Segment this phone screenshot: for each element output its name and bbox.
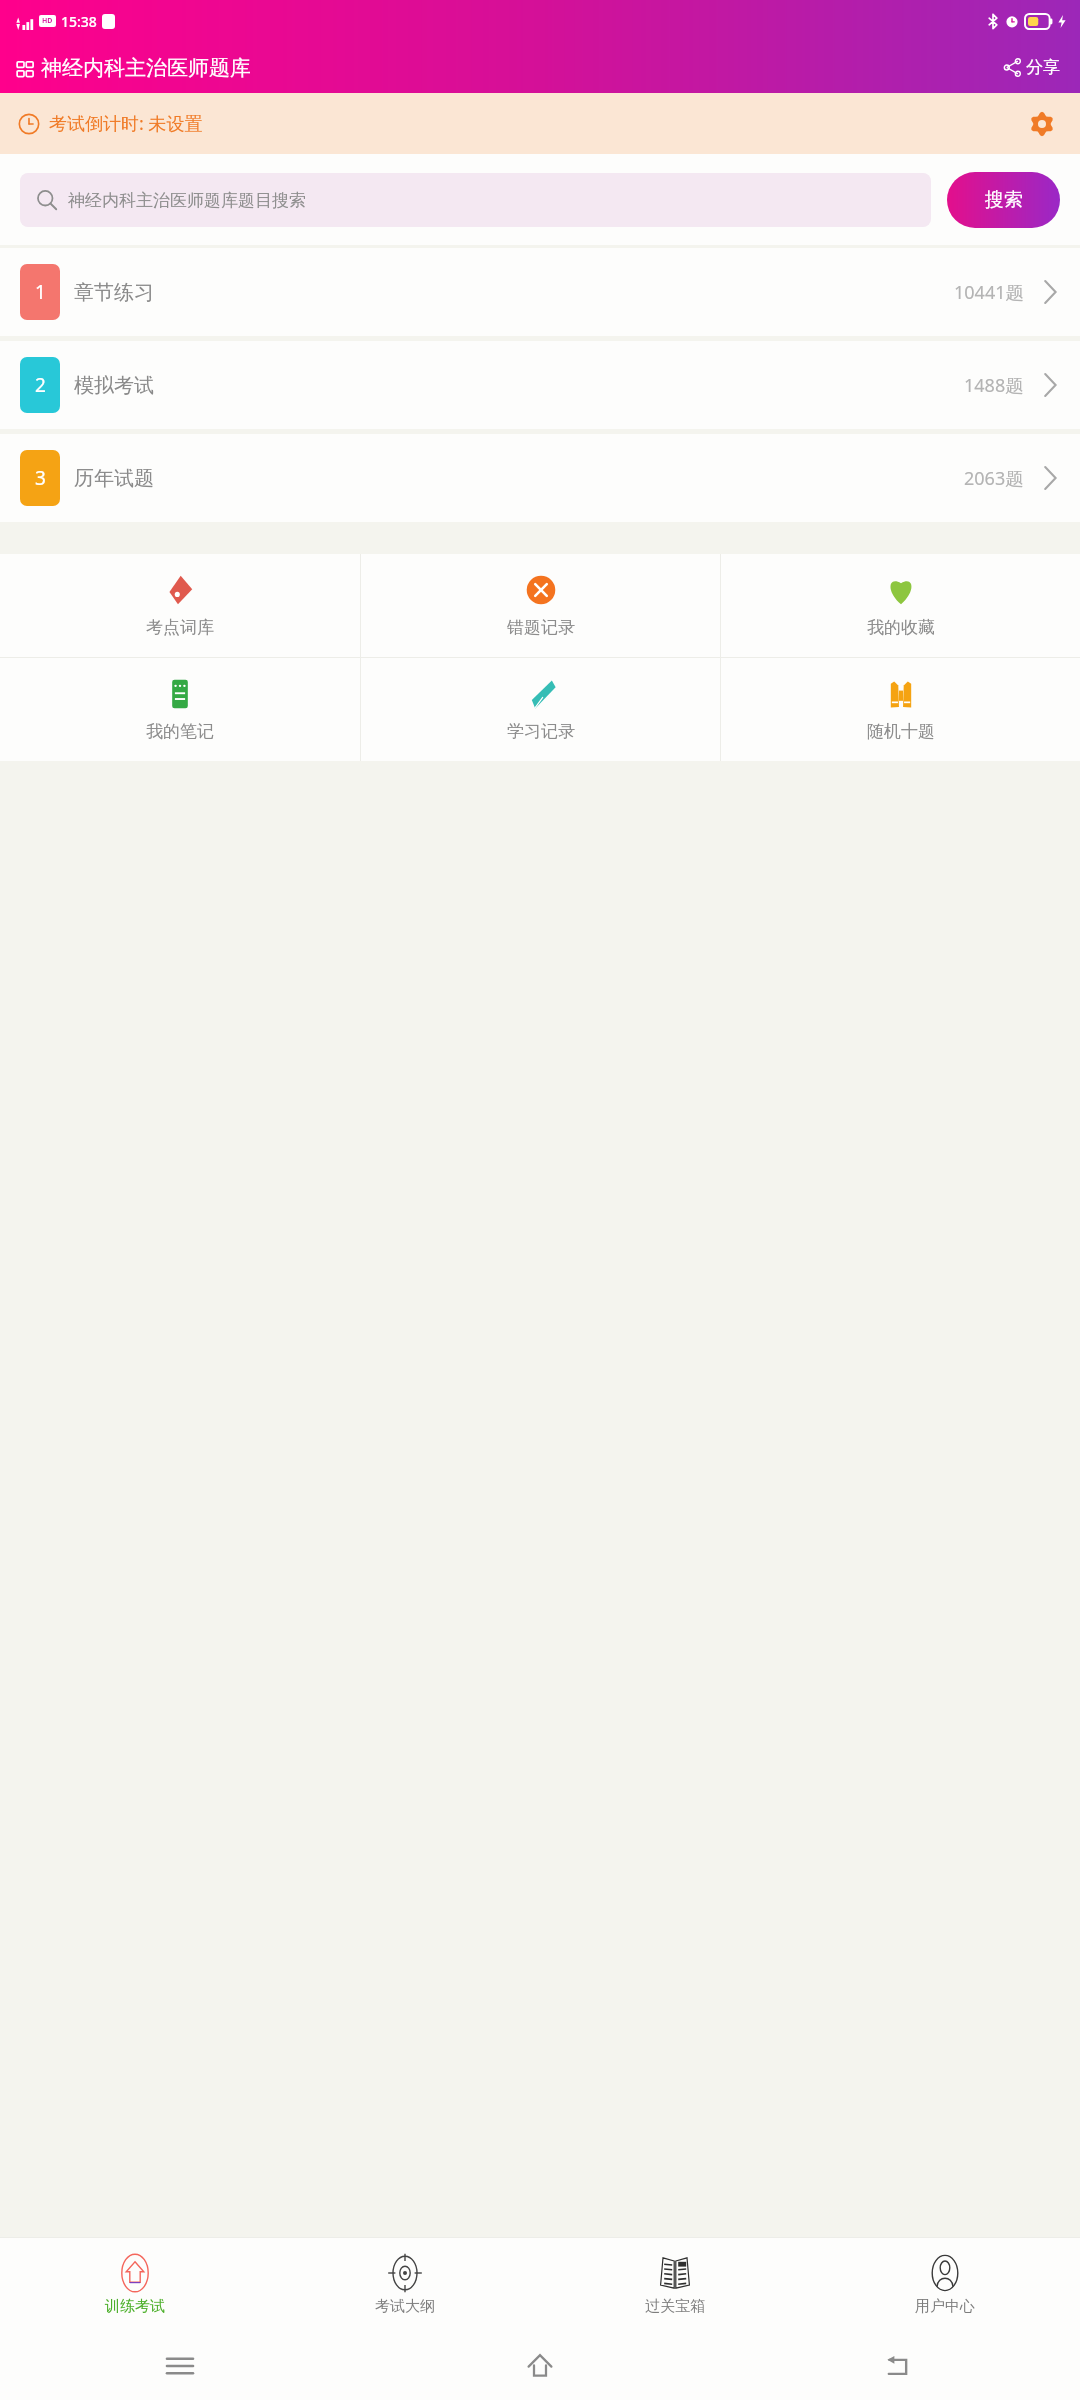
staticText: 分享 bbox=[1026, 57, 1060, 78]
staticText: 随机十题 bbox=[867, 721, 935, 742]
staticText: 考试倒计时: 未设置 bbox=[49, 111, 203, 136]
staticText: 用户中心 bbox=[915, 2297, 975, 2316]
staticText: 3 bbox=[35, 465, 46, 491]
staticText: 学习记录 bbox=[507, 721, 575, 742]
button[interactable]: 用户中心 bbox=[810, 2238, 1080, 2331]
button[interactable]: 3 bbox=[0, 434, 1080, 522]
button[interactable]: 考点词库 bbox=[0, 554, 360, 657]
button[interactable]: 神经内科主治医师题库题目搜索 bbox=[20, 173, 931, 227]
staticText: 考点词库 bbox=[146, 617, 214, 638]
staticText: 2063题 bbox=[964, 466, 1024, 491]
other: Recents bbox=[167, 2353, 193, 2379]
button[interactable]: 错题记录 bbox=[361, 554, 720, 657]
button[interactable]: 我的笔记 bbox=[0, 658, 360, 761]
button[interactable]: 训练考试 bbox=[0, 2238, 270, 2331]
staticText: 搜索 bbox=[985, 188, 1023, 212]
button[interactable]: 我的收藏 bbox=[721, 554, 1080, 657]
staticText: 章节练习 bbox=[74, 280, 154, 305]
staticText: 神经内科主治医师题库 bbox=[41, 55, 251, 81]
button[interactable]: 过关宝箱 bbox=[540, 2238, 810, 2331]
staticText: 过关宝箱 bbox=[645, 2297, 705, 2316]
other: Home bbox=[525, 2351, 555, 2381]
staticText: 模拟考试 bbox=[74, 373, 154, 398]
staticText: 神经内科主治医师题库题目搜索 bbox=[68, 190, 306, 211]
button[interactable]: 随机十题 bbox=[721, 658, 1080, 761]
staticText: 我的收藏 bbox=[867, 617, 935, 638]
button[interactable]: 1 bbox=[0, 248, 1080, 336]
button[interactable]: 考试大纲 bbox=[270, 2238, 540, 2331]
button[interactable]: 考试倒计时: 未设置 bbox=[0, 93, 1080, 154]
staticText: 训练考试 bbox=[105, 2297, 165, 2316]
staticText: 错题记录 bbox=[507, 617, 575, 638]
button[interactable]: 分享 bbox=[997, 53, 1066, 82]
button[interactable]: 设置 bbox=[1022, 104, 1062, 144]
staticText: 历年试题 bbox=[74, 466, 154, 491]
staticText: 2 bbox=[35, 372, 46, 398]
staticText: 1488题 bbox=[964, 373, 1024, 398]
staticText: 我的笔记 bbox=[146, 721, 214, 742]
staticText: 10441题 bbox=[954, 280, 1024, 305]
staticText: 1 bbox=[35, 279, 46, 305]
staticText: 考试大纲 bbox=[375, 2297, 435, 2316]
button[interactable]: 2 bbox=[0, 341, 1080, 429]
staticText: HD bbox=[42, 16, 53, 26]
button[interactable]: 学习记录 bbox=[361, 658, 720, 761]
other: Back bbox=[886, 2352, 914, 2380]
staticText: 15:38 bbox=[61, 12, 97, 31]
button[interactable]: 搜索 bbox=[947, 172, 1060, 228]
